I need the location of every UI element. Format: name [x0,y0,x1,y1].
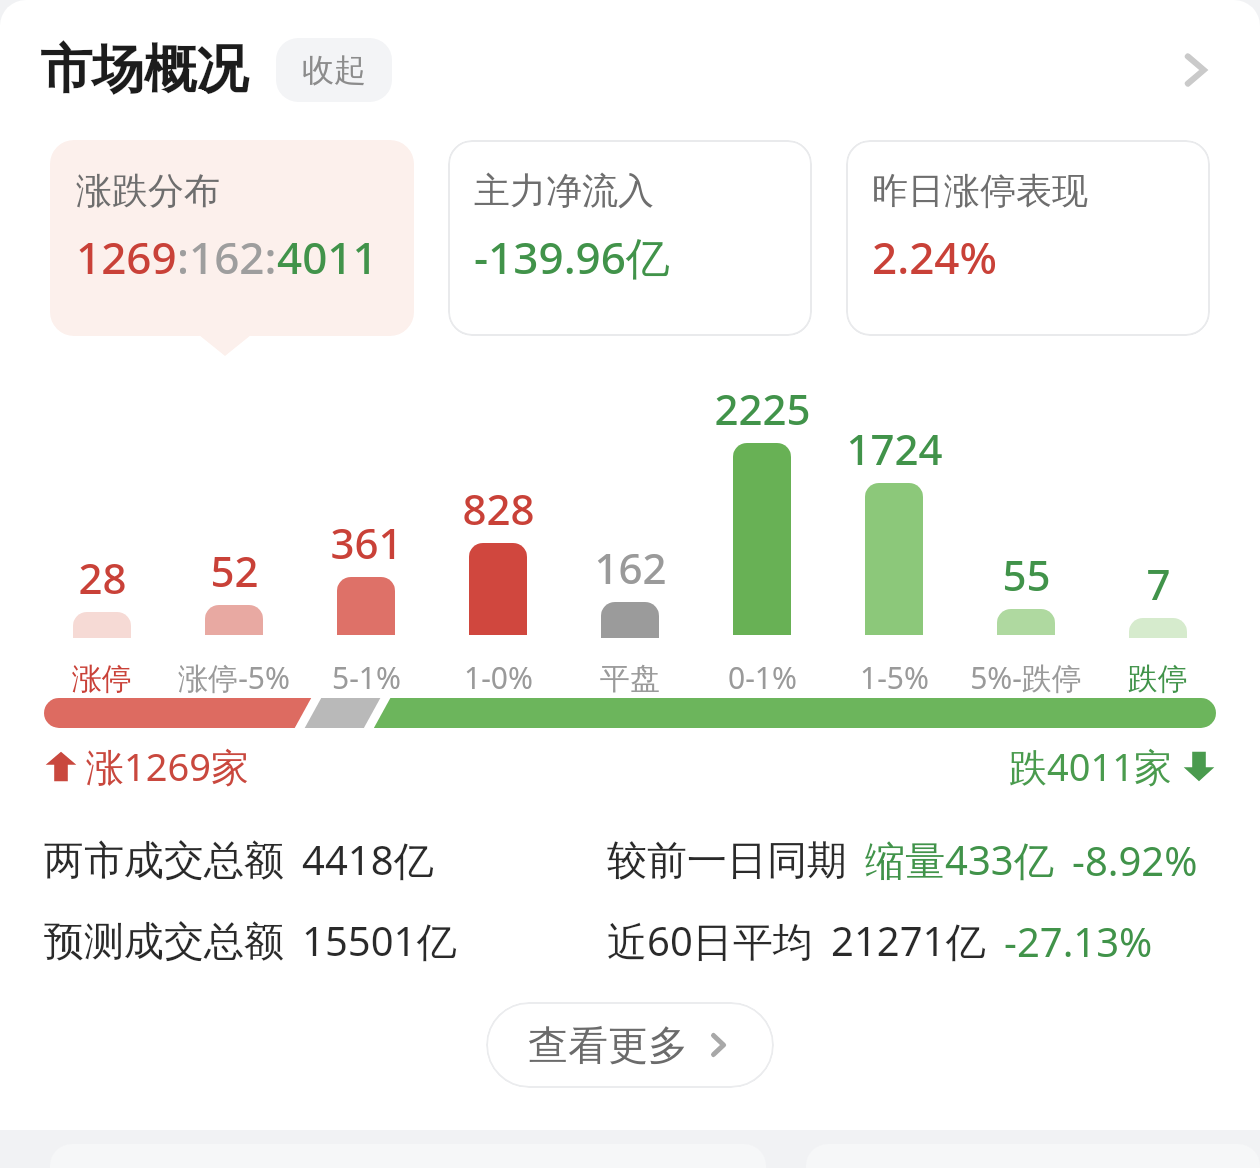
button[interactable]: More [1160,35,1230,105]
staticText: 15501亿 [302,913,457,968]
staticText: 1269 [76,227,177,287]
staticText: 查看更多 [528,1020,688,1070]
staticText: 4011 [277,227,378,287]
staticText: 5-1% [332,657,401,698]
staticText: 涨跌分布 [76,168,220,213]
staticText: 52 [210,542,259,599]
staticText: 1-0% [464,657,533,698]
staticText: 4418亿 [302,832,434,887]
staticText: 涨1269家 [86,740,249,792]
staticText: -139.96亿 [474,227,670,287]
staticText: 828 [462,480,535,537]
staticText: 21271亿 [831,913,986,968]
staticText: 市场概况 [40,37,248,103]
staticText: 跌停 [1128,660,1188,698]
staticText: :162: [177,227,277,287]
staticText: 近60日平均 [607,913,813,968]
staticText: 162 [594,539,667,596]
staticText: 主力净流入 [474,168,654,213]
staticText: 跌4011家 [1009,740,1172,792]
staticText: 7 [1146,555,1171,612]
staticText: 涨停 [72,660,132,698]
staticText: 收起 [302,50,366,90]
staticText: 5%-跌停 [970,657,1082,698]
staticText: 昨日涨停表现 [872,168,1088,213]
staticText: 涨停-5% [178,657,290,698]
button[interactable]: 查看更多 [486,1002,774,1088]
button[interactable]: 昨日涨停表现 [846,140,1210,336]
staticText: 较前一日同期 [607,835,847,885]
button[interactable]: 收起 [276,38,392,102]
staticText: -27.13% [1004,914,1153,968]
staticText: 28 [78,549,127,606]
staticText: 预测成交总额 [44,916,284,966]
staticText: 1-5% [860,657,929,698]
staticText: 2225 [714,380,811,437]
button[interactable]: 涨跌分布 [50,140,414,336]
staticText: 55 [1002,546,1051,603]
staticText: 0-1% [728,657,797,698]
staticText: 1724 [846,420,943,477]
staticText: 2.24% [872,227,997,287]
staticText: 两市成交总额 [44,835,284,885]
button[interactable]: 主力净流入 [448,140,812,336]
staticText: 平盘 [600,660,660,698]
staticText: -8.92% [1072,833,1198,887]
staticText: 361 [330,514,403,571]
staticText: 缩量433亿 [865,832,1054,887]
